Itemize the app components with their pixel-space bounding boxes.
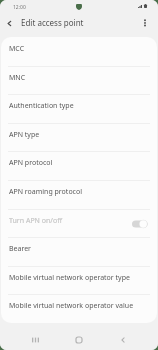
button[interactable]: MNC [1,66,157,95]
button[interactable]: Bearer [1,237,157,266]
staticText: APN protocol [9,158,53,168]
staticText: Authentication type [9,101,74,111]
button[interactable]: More options [135,14,154,33]
button[interactable]: MCC [1,37,157,66]
staticText: Bearer [9,244,32,254]
button[interactable]: Turn APN on/off [1,209,157,238]
button[interactable]: Authentication type [1,94,157,123]
staticText: MNC [9,73,26,83]
button[interactable]: Home [66,329,92,350]
button[interactable]: APN roaming protocol [1,180,157,209]
button[interactable]: APN protocol [1,151,157,180]
button[interactable]: Recents [22,329,48,350]
button[interactable]: Back [110,329,136,350]
button[interactable]: Navigate up [0,14,19,33]
button[interactable]: APN type [1,123,157,152]
button[interactable]: Mobile virtual network operator type [1,266,157,295]
staticText: MCC [9,44,25,54]
button[interactable]: Mobile virtual network operator value [1,294,157,323]
staticText: Edit access point [21,17,84,28]
staticText: Turn APN on/off [9,216,62,226]
staticText: APN type [9,130,40,140]
staticText: Mobile virtual network operator value [9,301,134,311]
staticText: 12:00 [13,4,26,11]
staticText: Mobile virtual network operator type [9,273,130,283]
staticText: APN roaming protocol [9,187,83,197]
